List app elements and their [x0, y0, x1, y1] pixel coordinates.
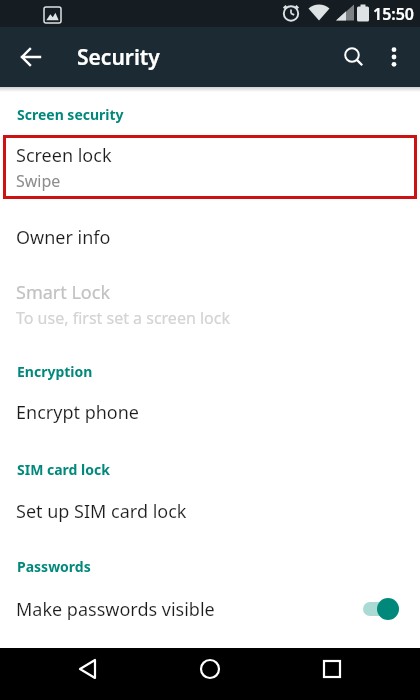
- button[interactable]: [27, 648, 149, 700]
- button[interactable]: [331, 35, 375, 79]
- staticText: Security: [77, 43, 160, 72]
- staticText: Owner info: [16, 225, 111, 250]
- button[interactable]: Encrypt phone: [0, 388, 420, 436]
- button[interactable]: [271, 648, 393, 700]
- button[interactable]: Set up SIM card lock: [0, 487, 420, 535]
- staticText: Screen lock: [16, 143, 112, 168]
- button[interactable]: [149, 648, 271, 700]
- staticText: 15:50: [373, 3, 415, 25]
- button[interactable]: Owner info: [0, 213, 420, 261]
- staticText: Passwords: [17, 557, 91, 576]
- staticText: Screen security: [17, 105, 124, 124]
- staticText: Set up SIM card lock: [16, 499, 187, 524]
- staticText: Swipe: [16, 170, 61, 192]
- staticText: Make passwords visible: [16, 597, 215, 622]
- button[interactable]: Screen lock: [0, 135, 420, 199]
- staticText: SIM card lock: [17, 460, 110, 479]
- button[interactable]: [8, 34, 54, 80]
- staticText: Smart Lock: [16, 280, 110, 305]
- staticText: Encryption: [17, 362, 93, 381]
- staticText: Encrypt phone: [16, 400, 139, 425]
- staticText: To use, first set a screen lock: [16, 307, 231, 329]
- button[interactable]: Make passwords visible: [0, 585, 420, 633]
- button[interactable]: [374, 38, 412, 76]
- button[interactable]: Smart Lock: [0, 272, 420, 336]
